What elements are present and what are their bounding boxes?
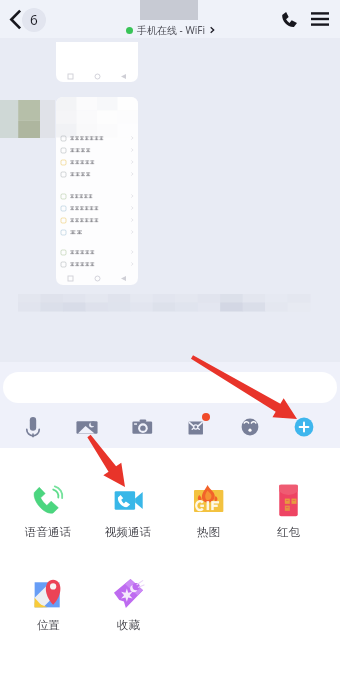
button[interactable]: 热图 xyxy=(170,478,246,539)
button[interactable] xyxy=(61,258,134,270)
staticText: 红包 xyxy=(277,525,300,539)
button[interactable] xyxy=(61,168,134,180)
staticText: 6 xyxy=(30,11,38,29)
button[interactable]: Back xyxy=(2,6,28,32)
button[interactable] xyxy=(61,246,134,258)
button[interactable] xyxy=(56,97,138,285)
staticText: 热图 xyxy=(197,525,220,539)
button[interactable] xyxy=(61,214,134,226)
button[interactable]: Call xyxy=(275,5,303,33)
button[interactable]: More xyxy=(283,406,325,448)
button[interactable]: 语音通话 xyxy=(10,478,86,539)
button[interactable] xyxy=(61,190,134,202)
button[interactable]: 收藏 xyxy=(90,571,166,632)
button[interactable]: Mail xyxy=(175,406,217,448)
button[interactable] xyxy=(3,372,337,403)
button[interactable]: 6 xyxy=(22,8,46,32)
button[interactable] xyxy=(61,156,134,168)
staticText: 视频通话 xyxy=(105,525,151,539)
button[interactable] xyxy=(61,132,134,144)
button[interactable]: Gallery xyxy=(66,406,108,448)
button[interactable] xyxy=(61,144,134,156)
button[interactable]: Emoji xyxy=(229,406,271,448)
button[interactable] xyxy=(61,226,134,238)
staticText: 收藏 xyxy=(117,618,140,632)
button[interactable]: Voice message xyxy=(12,406,54,448)
button[interactable]: 红包 xyxy=(250,478,326,539)
button[interactable]: Menu xyxy=(306,5,334,33)
button[interactable] xyxy=(56,42,138,82)
button[interactable]: Camera xyxy=(121,406,163,448)
staticText: 语音通话 xyxy=(25,525,71,539)
button[interactable]: 手机在线 - WiFi xyxy=(126,23,215,37)
staticText: 手机在线 - WiFi xyxy=(137,23,206,37)
button[interactable] xyxy=(61,202,134,214)
staticText: 位置 xyxy=(37,618,60,632)
button[interactable]: 位置 xyxy=(10,571,86,632)
button[interactable]: 视频通话 xyxy=(90,478,166,539)
